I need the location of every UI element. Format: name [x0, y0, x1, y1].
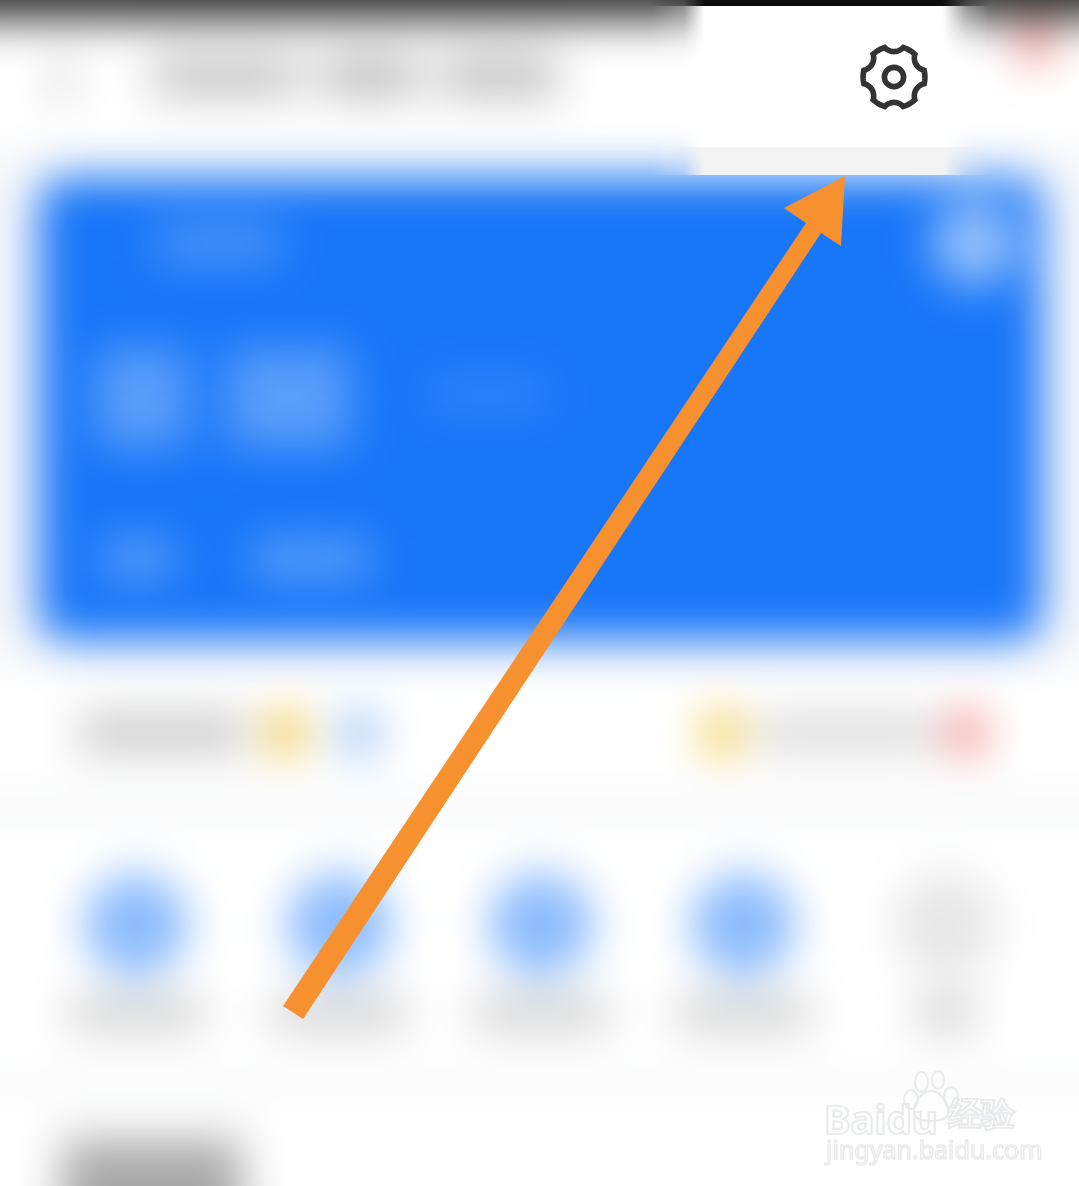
- button[interactable]: [845, 860, 1047, 1050]
- button[interactable]: [238, 860, 440, 1050]
- button[interactable]: [38, 177, 1043, 641]
- button[interactable]: [440, 860, 642, 1050]
- staticText: jingyan.baidu.com: [826, 1132, 1043, 1166]
- button[interactable]: [35, 860, 237, 1050]
- button[interactable]: [642, 860, 844, 1050]
- button[interactable]: Settings: [839, 22, 949, 132]
- staticText: Baidu: [824, 1091, 938, 1145]
- staticText: 经验: [948, 1094, 1014, 1136]
